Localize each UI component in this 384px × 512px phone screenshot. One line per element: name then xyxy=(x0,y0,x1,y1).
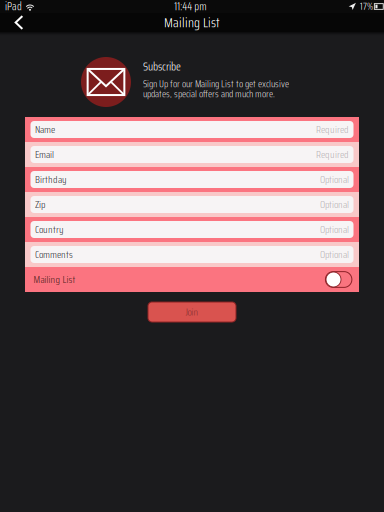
staticText: 11:44 pm xyxy=(174,0,206,15)
staticText: Comments xyxy=(35,247,73,262)
staticText: Optional xyxy=(320,197,349,212)
button[interactable]: Comments xyxy=(25,242,359,267)
staticText: Optional xyxy=(320,222,349,237)
staticText: Birthday xyxy=(35,172,67,187)
button[interactable]: Join xyxy=(148,302,236,322)
staticText: iPad xyxy=(5,0,22,15)
staticText: Optional xyxy=(320,247,349,262)
button[interactable]: Zip xyxy=(25,192,359,217)
staticText: Name xyxy=(35,122,55,137)
staticText: Required xyxy=(316,122,349,137)
staticText: Optional xyxy=(320,172,349,187)
staticText: Subscribe xyxy=(143,58,181,75)
button[interactable]: Mailing List xyxy=(25,267,359,292)
button[interactable]: Email xyxy=(25,142,359,167)
button[interactable]: Country xyxy=(25,217,359,242)
staticText: Email xyxy=(35,147,54,162)
staticText: Country xyxy=(35,222,64,237)
staticText: Required xyxy=(316,147,349,162)
button[interactable]: Birthday xyxy=(25,167,359,192)
button[interactable]: Back xyxy=(4,13,34,32)
staticText: 17% xyxy=(360,0,373,14)
button[interactable]: Name xyxy=(25,117,359,142)
staticText: Zip xyxy=(35,197,46,212)
staticText: Sign Up for our Mailing List to get excl… xyxy=(143,76,289,91)
staticText: Mailing List xyxy=(164,12,220,33)
staticText: updates, special offers and much more. xyxy=(143,86,275,101)
staticText: Mailing List xyxy=(33,272,75,287)
staticText: Join xyxy=(185,304,198,320)
